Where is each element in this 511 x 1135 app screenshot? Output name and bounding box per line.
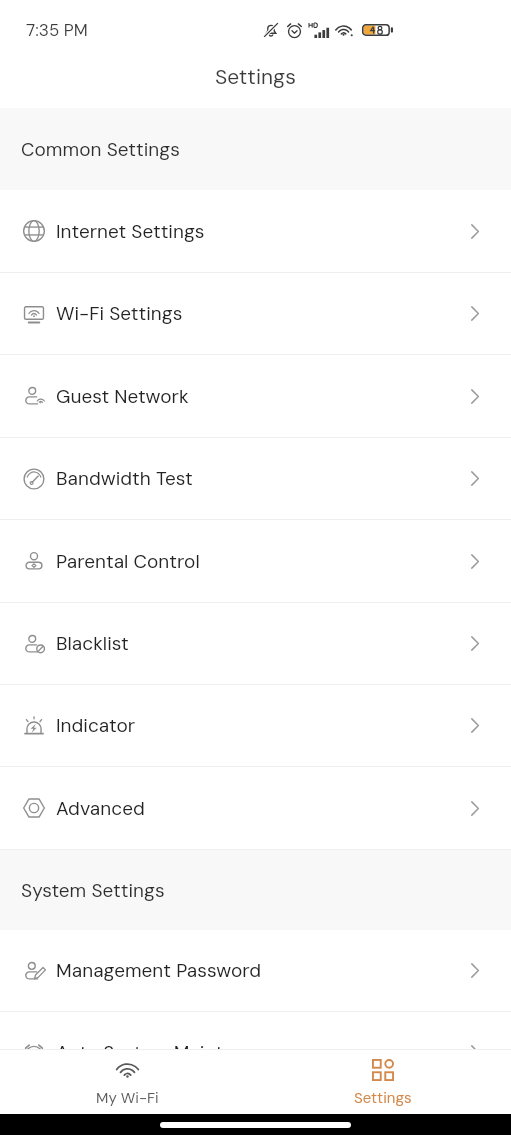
staticText: Settings — [215, 63, 296, 90]
button[interactable]: Settings — [255, 1050, 511, 1114]
button[interactable]: Bandwidth Test — [0, 438, 511, 519]
staticText: Advanced — [56, 796, 145, 821]
staticText: Blacklist — [56, 631, 129, 656]
staticText: Auto System Maintenance — [56, 1040, 288, 1049]
staticText: My Wi-Fi — [96, 1088, 159, 1108]
button[interactable]: Guest Network — [0, 355, 511, 437]
button[interactable]: Parental Control — [0, 520, 511, 602]
staticText: Internet Settings — [56, 219, 205, 244]
staticText: Settings — [354, 1088, 412, 1108]
staticText: Indicator — [56, 713, 136, 738]
button[interactable]: Auto System Maintenance — [0, 1012, 511, 1049]
staticText: 7:35 PM — [26, 19, 88, 41]
button[interactable]: Internet Settings — [0, 190, 511, 272]
button[interactable]: My Wi-Fi — [0, 1050, 255, 1114]
staticText: Parental Control — [56, 549, 200, 574]
button[interactable]: Blacklist — [0, 603, 511, 684]
staticText: Management Password — [56, 958, 262, 983]
button[interactable]: Management Password — [0, 930, 511, 1011]
button[interactable]: Advanced — [0, 767, 511, 849]
staticText: System Settings — [21, 878, 165, 903]
staticText: Common Settings — [21, 137, 180, 162]
button[interactable]: Wi-Fi Settings — [0, 273, 511, 354]
staticText: Bandwidth Test — [56, 466, 193, 491]
staticText: Wi-Fi Settings — [56, 301, 183, 326]
button[interactable]: Indicator — [0, 685, 511, 766]
staticText: Guest Network — [56, 384, 189, 409]
